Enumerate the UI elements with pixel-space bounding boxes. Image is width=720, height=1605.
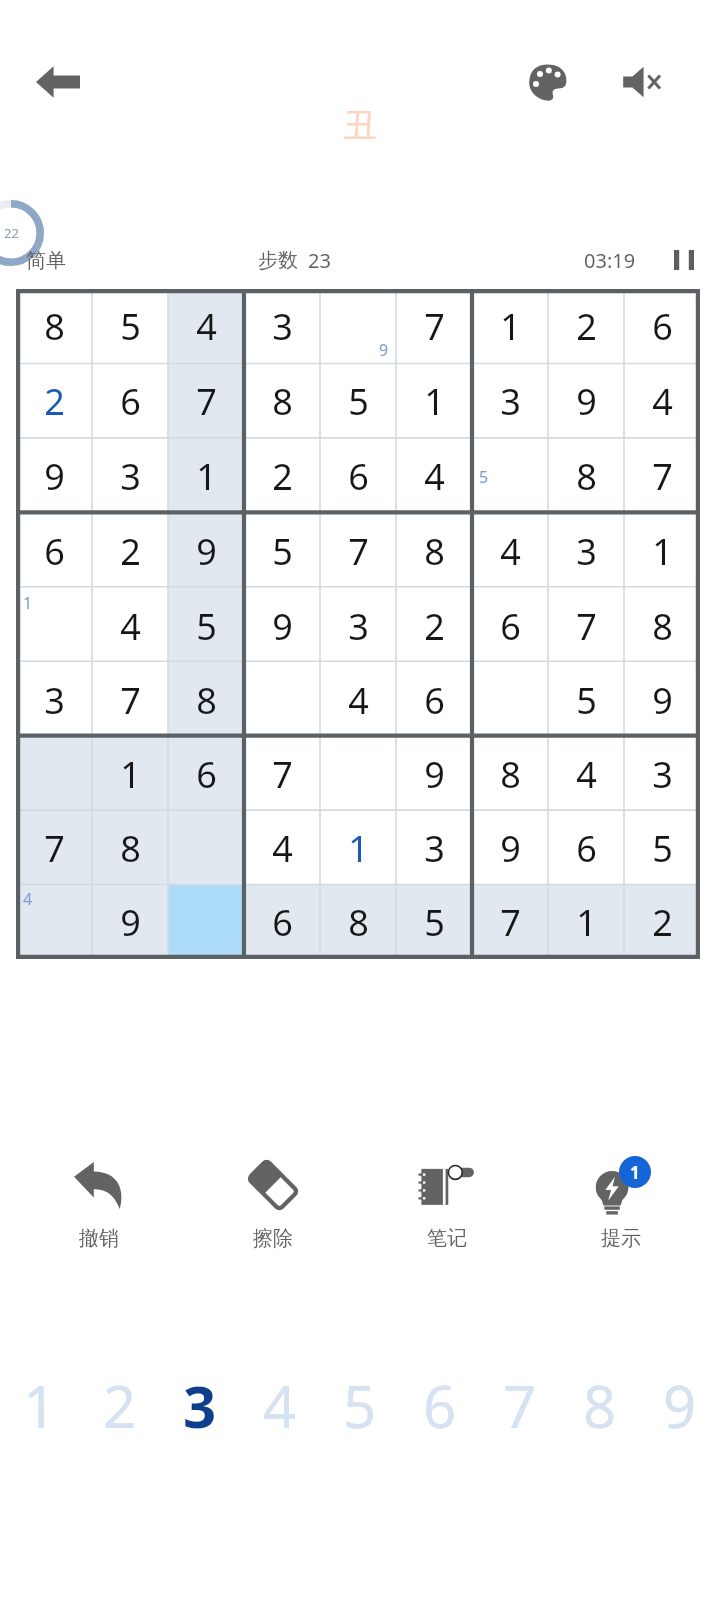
button[interactable]: 5 — [396, 885, 472, 959]
button[interactable]: 8 — [472, 737, 548, 811]
button[interactable]: 8 — [560, 1330, 640, 1480]
button[interactable]: 5 — [92, 289, 168, 364]
button[interactable]: 8 — [624, 589, 700, 663]
button[interactable]: 1 — [16, 589, 92, 663]
button[interactable]: 7 — [244, 737, 320, 811]
button[interactable]: 7 — [168, 364, 244, 439]
button[interactable]: 4 — [548, 737, 624, 811]
button[interactable]: 9 — [640, 1330, 720, 1480]
button[interactable] — [472, 663, 548, 737]
button[interactable]: 3 — [160, 1330, 240, 1480]
button[interactable]: 4 — [472, 514, 548, 589]
button[interactable]: 1 — [548, 885, 624, 959]
button[interactable]: 1 — [472, 289, 548, 364]
button[interactable]: 3 — [92, 439, 168, 514]
button[interactable]: 6 — [400, 1330, 480, 1480]
button[interactable]: 8 — [320, 885, 396, 959]
button[interactable]: 6 — [472, 589, 548, 663]
button[interactable]: 8 — [244, 364, 320, 439]
button[interactable]: 3 — [320, 589, 396, 663]
button[interactable]: 4 — [244, 811, 320, 885]
button[interactable]: 4 — [240, 1330, 320, 1480]
button[interactable]: 3 — [16, 663, 92, 737]
button[interactable]: 6 — [16, 514, 92, 589]
button[interactable]: Mute — [610, 50, 674, 114]
button[interactable]: 7 — [92, 663, 168, 737]
button[interactable]: 4 — [624, 364, 700, 439]
button[interactable]: 6 — [168, 737, 244, 811]
button[interactable]: 2 — [92, 514, 168, 589]
button[interactable]: 4 — [396, 439, 472, 514]
button[interactable]: 1 — [320, 811, 396, 885]
button[interactable]: 3 — [548, 514, 624, 589]
button[interactable]: 6 — [548, 811, 624, 885]
button[interactable]: 5 — [168, 589, 244, 663]
button[interactable]: 9 — [320, 289, 396, 364]
button[interactable]: 7 — [480, 1330, 560, 1480]
button[interactable]: 6 — [320, 439, 396, 514]
button[interactable]: 5 — [624, 811, 700, 885]
button[interactable]: 1 — [168, 439, 244, 514]
button[interactable]: 3 — [244, 289, 320, 364]
button[interactable]: 1 — [624, 514, 700, 589]
button[interactable]: 2 — [396, 589, 472, 663]
button[interactable]: 7 — [320, 514, 396, 589]
button[interactable]: 7 — [624, 439, 700, 514]
button[interactable]: 擦除 — [198, 1140, 348, 1280]
button[interactable] — [16, 737, 92, 811]
button[interactable]: 1 — [0, 1330, 80, 1480]
button[interactable]: 5 — [320, 1330, 400, 1480]
button[interactable]: 5 — [244, 514, 320, 589]
button[interactable]: 3 — [624, 737, 700, 811]
button[interactable]: 笔记 — [372, 1140, 522, 1280]
button[interactable]: 4 — [16, 885, 92, 959]
button[interactable]: 2 — [80, 1330, 160, 1480]
button[interactable]: 5 — [320, 364, 396, 439]
button[interactable]: 2 — [16, 364, 92, 439]
button[interactable]: 9 — [396, 737, 472, 811]
button[interactable]: 6 — [396, 663, 472, 737]
button[interactable]: 6 — [92, 364, 168, 439]
button[interactable]: 8 — [396, 514, 472, 589]
button[interactable]: Pause — [662, 238, 706, 282]
button[interactable]: 9 — [92, 885, 168, 959]
button[interactable] — [168, 811, 244, 885]
button[interactable]: 9 — [548, 364, 624, 439]
button[interactable]: Theme — [516, 50, 580, 114]
button[interactable]: 7 — [472, 885, 548, 959]
button[interactable]: 7 — [548, 589, 624, 663]
button[interactable]: 6 — [624, 289, 700, 364]
button[interactable]: 8 — [548, 439, 624, 514]
button[interactable]: 4 — [92, 589, 168, 663]
button[interactable]: 3 — [396, 811, 472, 885]
button[interactable]: 8 — [168, 663, 244, 737]
button[interactable]: 9 — [168, 514, 244, 589]
button[interactable]: 7 — [396, 289, 472, 364]
button[interactable]: 4 — [320, 663, 396, 737]
button[interactable]: 6 — [244, 885, 320, 959]
button[interactable] — [320, 737, 396, 811]
button[interactable]: 8 — [92, 811, 168, 885]
button[interactable]: 1 — [546, 1140, 696, 1280]
button[interactable]: 9 — [16, 439, 92, 514]
button[interactable]: 5 — [472, 439, 548, 514]
button[interactable] — [244, 663, 320, 737]
button[interactable]: 2 — [548, 289, 624, 364]
button[interactable]: 简单 — [26, 248, 66, 273]
button[interactable]: Back — [24, 48, 92, 116]
button[interactable]: 1 — [396, 364, 472, 439]
button[interactable]: 8 — [16, 289, 92, 364]
button[interactable]: 2 — [624, 885, 700, 959]
button[interactable]: 撤销 — [24, 1140, 174, 1280]
button[interactable] — [168, 885, 244, 959]
button[interactable]: 7 — [16, 811, 92, 885]
button[interactable]: 5 — [548, 663, 624, 737]
button[interactable]: 2 — [244, 439, 320, 514]
button[interactable]: 9 — [624, 663, 700, 737]
button[interactable]: 1 — [92, 737, 168, 811]
button[interactable]: 3 — [472, 364, 548, 439]
button[interactable]: 4 — [168, 289, 244, 364]
staticText: 6 — [423, 1366, 457, 1445]
button[interactable]: 9 — [472, 811, 548, 885]
button[interactable]: 9 — [244, 589, 320, 663]
